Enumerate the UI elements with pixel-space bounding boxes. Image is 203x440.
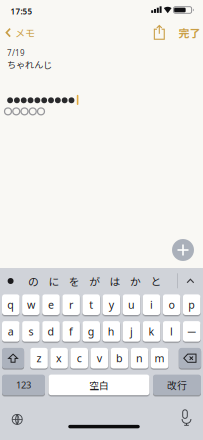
button[interactable]: f xyxy=(62,321,80,342)
staticText: o xyxy=(169,298,175,312)
staticText: n xyxy=(136,351,143,365)
button[interactable]: e xyxy=(42,294,60,315)
button[interactable]: 123 xyxy=(2,375,45,395)
button[interactable]: h xyxy=(102,321,120,342)
button[interactable]: は xyxy=(106,271,124,291)
staticText: b xyxy=(116,351,123,365)
button[interactable]: c xyxy=(70,348,88,368)
button[interactable]: Candidate ● xyxy=(3,271,19,291)
staticText: h xyxy=(108,324,115,338)
staticText: i xyxy=(150,298,153,312)
staticText: z xyxy=(36,351,41,365)
staticText: g xyxy=(88,324,95,338)
staticText: s xyxy=(28,324,33,338)
staticText: q xyxy=(7,298,14,312)
button[interactable]: Dictate xyxy=(178,409,194,429)
button[interactable]: か xyxy=(126,271,144,291)
button[interactable]: が xyxy=(86,271,104,291)
button[interactable]: Shift xyxy=(2,348,24,368)
staticText: y xyxy=(109,298,114,312)
staticText: ー xyxy=(187,324,197,339)
staticText: 7/19 xyxy=(7,47,25,58)
staticText: 123 xyxy=(16,379,31,391)
button[interactable]: の xyxy=(24,271,42,291)
staticText: t xyxy=(89,298,93,312)
staticText: は xyxy=(110,273,121,289)
button[interactable]: i xyxy=(143,294,160,315)
staticText: m xyxy=(155,351,165,365)
button[interactable]: 改行 xyxy=(153,375,201,395)
button[interactable]: Add xyxy=(172,239,194,261)
button[interactable]: d xyxy=(42,321,60,342)
button[interactable]: 空白 xyxy=(48,375,149,395)
button[interactable]: に xyxy=(45,271,63,291)
staticText: r xyxy=(69,298,73,312)
staticText: に xyxy=(48,273,59,289)
button[interactable]: r xyxy=(62,294,80,315)
staticText: e xyxy=(48,298,54,312)
staticText: d xyxy=(47,324,54,338)
staticText: 17:55 xyxy=(10,6,32,17)
button[interactable]: b xyxy=(111,348,128,368)
button[interactable]: k xyxy=(143,321,160,342)
button[interactable]: m xyxy=(151,348,168,368)
staticText: l xyxy=(170,324,173,338)
button[interactable]: l xyxy=(163,321,180,342)
staticText: f xyxy=(69,324,73,338)
button[interactable]: o xyxy=(163,294,180,315)
staticText: a xyxy=(8,324,14,338)
staticText: が xyxy=(89,273,100,289)
staticText: v xyxy=(97,351,102,365)
button[interactable]: ー xyxy=(183,321,200,342)
staticText: 改行 xyxy=(167,378,187,392)
staticText: メモ xyxy=(15,25,35,40)
staticText: p xyxy=(188,298,195,312)
button[interactable]: を xyxy=(65,271,83,291)
button[interactable]: g xyxy=(82,321,100,342)
button[interactable]: Collapse suggestions xyxy=(180,271,200,291)
button[interactable]: n xyxy=(131,348,148,368)
staticText: 完了 xyxy=(178,25,200,40)
staticText: の xyxy=(28,273,39,289)
button[interactable]: q xyxy=(2,294,20,315)
staticText: j xyxy=(130,324,133,338)
staticText: w xyxy=(27,298,35,312)
button[interactable]: s xyxy=(22,321,40,342)
button[interactable]: Next keyboard xyxy=(6,408,28,430)
staticText: ちゃれんじ xyxy=(7,58,52,71)
staticText: u xyxy=(128,298,135,312)
button[interactable]: Delete xyxy=(179,348,201,368)
button[interactable]: u xyxy=(123,294,140,315)
button[interactable]: j xyxy=(123,321,140,342)
staticText: を xyxy=(69,273,80,289)
button[interactable]: p xyxy=(183,294,200,315)
staticText: x xyxy=(56,351,62,365)
staticText: k xyxy=(148,324,154,338)
button[interactable]: z xyxy=(30,348,48,368)
button[interactable]: w xyxy=(22,294,40,315)
button[interactable]: Done xyxy=(177,26,201,40)
button[interactable]: Share xyxy=(154,25,165,40)
button[interactable]: v xyxy=(90,348,108,368)
button[interactable]: t xyxy=(82,294,100,315)
staticText: と xyxy=(150,273,161,289)
button[interactable]: y xyxy=(102,294,120,315)
staticText: 空白 xyxy=(89,378,109,392)
staticText: c xyxy=(77,351,82,365)
staticText: か xyxy=(130,273,141,289)
button[interactable]: x xyxy=(50,348,68,368)
button[interactable]: と xyxy=(147,271,165,291)
button[interactable]: a xyxy=(2,321,20,342)
button[interactable]: Back to Notes xyxy=(5,25,49,41)
